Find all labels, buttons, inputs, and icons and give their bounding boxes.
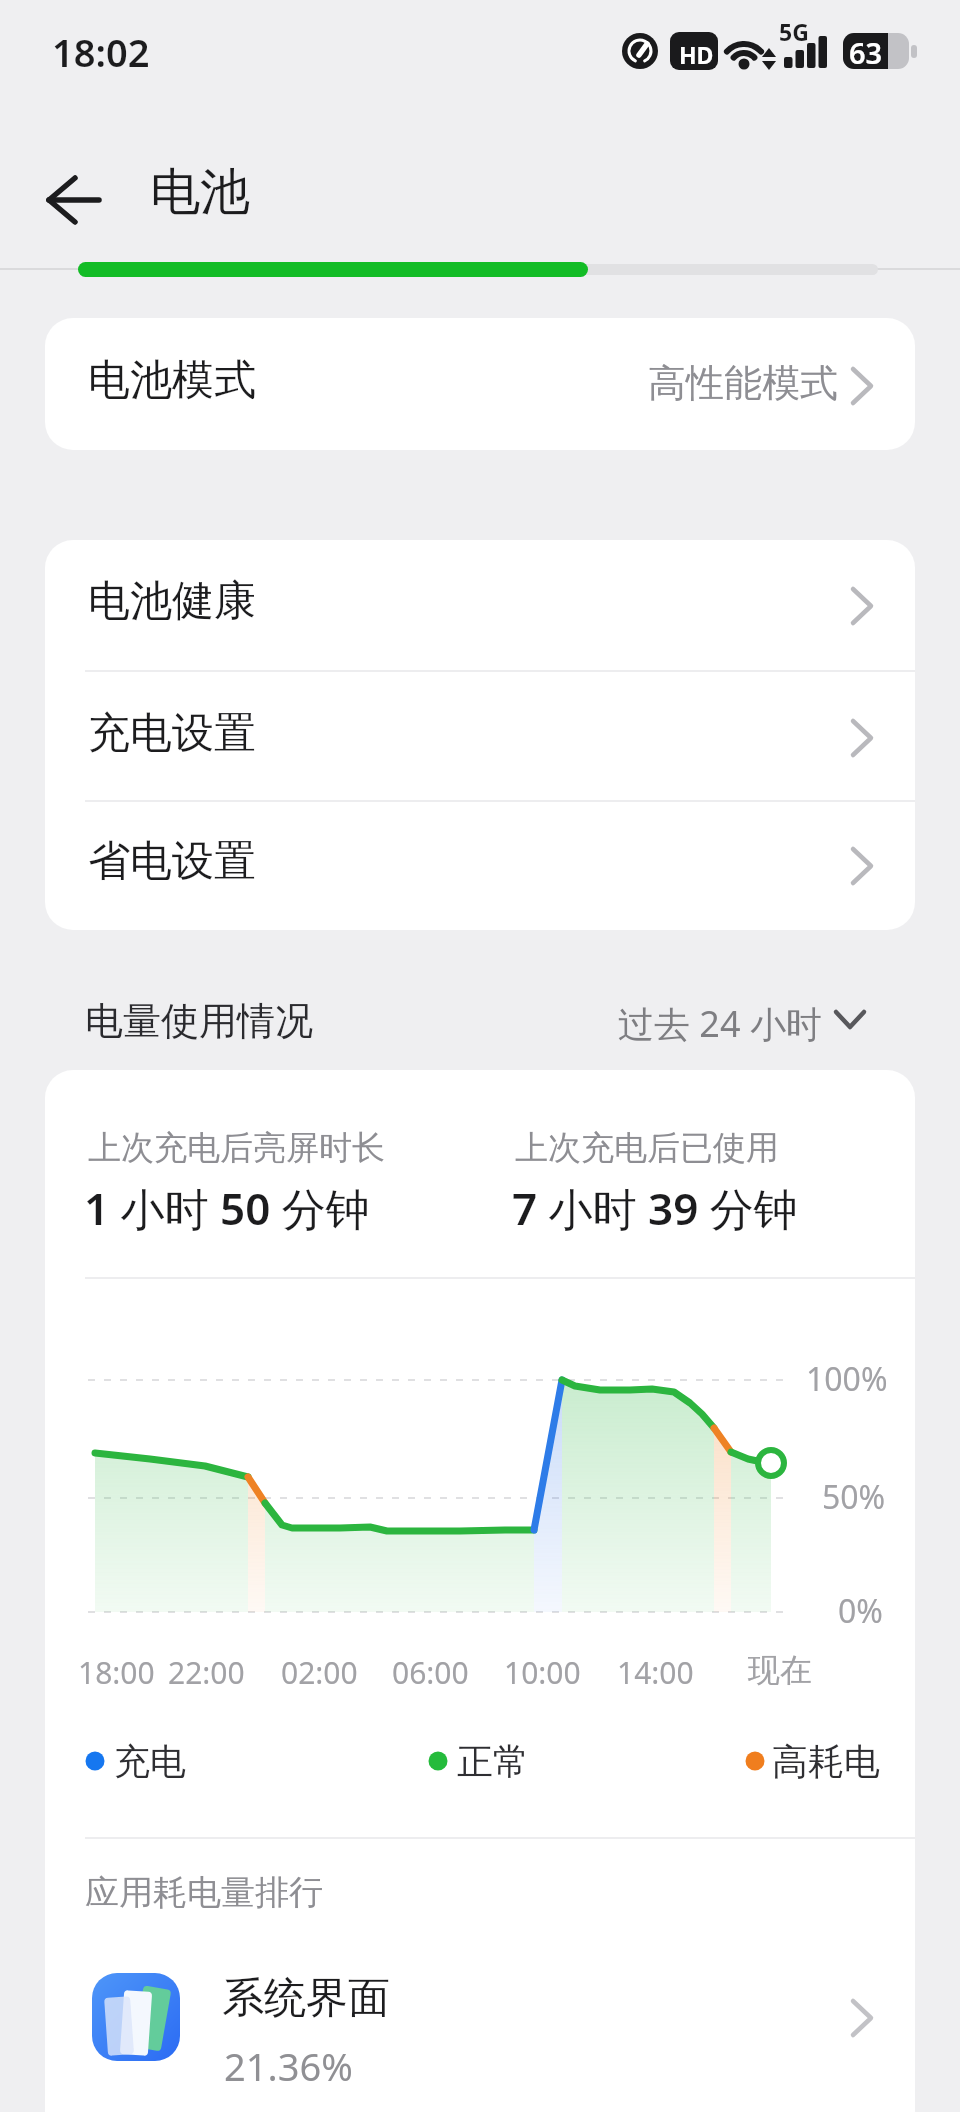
- staticText: 06:00: [392, 1652, 469, 1693]
- staticText: 0%: [838, 1589, 883, 1633]
- staticText: 21.36%: [224, 2040, 353, 2092]
- staticText: 100%: [806, 1357, 888, 1401]
- staticText: 电池: [150, 161, 250, 224]
- button[interactable]: [45, 318, 915, 450]
- staticText: 上次充电后已使用: [515, 1127, 779, 1169]
- staticText: 电池健康: [88, 575, 256, 628]
- staticText: 高耗电: [772, 1739, 880, 1784]
- staticText: 现在: [748, 1650, 812, 1690]
- staticText: 63: [849, 33, 883, 72]
- staticText: 14:00: [617, 1652, 694, 1693]
- button[interactable]: [45, 800, 915, 930]
- staticText: 系统界面: [222, 1972, 390, 2025]
- staticText: 50%: [822, 1475, 886, 1519]
- staticText: 7 小时 39 分钟: [512, 1178, 798, 1238]
- button[interactable]: [620, 985, 880, 1047]
- staticText: 电池模式: [88, 354, 256, 407]
- staticText: 高性能模式: [648, 359, 838, 407]
- staticText: 省电设置: [88, 835, 256, 888]
- staticText: 1 小时 50 分钟: [84, 1178, 370, 1238]
- staticText: HD: [679, 39, 714, 70]
- button[interactable]: [30, 162, 120, 240]
- button[interactable]: [45, 540, 915, 670]
- button[interactable]: [45, 670, 915, 800]
- staticText: 18:02: [52, 26, 150, 78]
- staticText: 正常: [457, 1739, 529, 1784]
- staticText: 电量使用情况: [85, 997, 313, 1045]
- staticText: 应用耗电量排行: [85, 1871, 323, 1914]
- staticText: 02:00: [281, 1652, 358, 1693]
- staticText: 10:00: [504, 1652, 581, 1693]
- staticText: 22:00: [168, 1652, 245, 1693]
- staticText: 上次充电后亮屏时长: [88, 1127, 385, 1169]
- staticText: 过去 24 小时: [618, 999, 822, 1048]
- staticText: 18:00: [78, 1652, 155, 1693]
- button[interactable]: [45, 1945, 915, 2095]
- staticText: 充电设置: [88, 707, 256, 760]
- staticText: 充电: [114, 1739, 186, 1784]
- staticText: 5G: [779, 16, 809, 47]
